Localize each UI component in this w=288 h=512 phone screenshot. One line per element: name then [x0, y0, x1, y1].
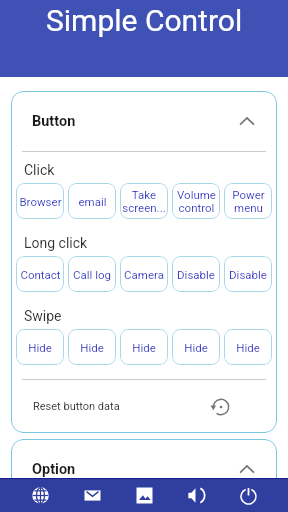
- button[interactable]: Hide: [68, 329, 116, 365]
- staticText: Disable: [177, 268, 215, 281]
- staticText: Browser: [19, 195, 62, 208]
- staticText: Swipe: [24, 308, 62, 324]
- staticText: Hide: [132, 341, 156, 354]
- button[interactable]: Disable: [224, 256, 272, 292]
- staticText: Reset button data: [33, 400, 120, 413]
- button[interactable]: Hide: [172, 329, 220, 365]
- button[interactable]: Hide: [120, 329, 168, 365]
- button[interactable]: Power: [222, 479, 274, 512]
- button[interactable]: Call log: [68, 256, 116, 292]
- button[interactable]: Browser: [16, 183, 64, 219]
- staticText: Hide: [80, 341, 104, 354]
- button[interactable]: Camera: [120, 256, 168, 292]
- staticText: Button: [32, 113, 76, 130]
- staticText: Volume control: [177, 188, 216, 214]
- staticText: Simple Control: [46, 3, 243, 38]
- button[interactable]: Gallery: [118, 479, 170, 512]
- button[interactable]: Volume: [170, 479, 222, 512]
- staticText: Hide: [236, 341, 260, 354]
- button[interactable]: Disable: [172, 256, 220, 292]
- button[interactable]: Take screen...: [120, 183, 168, 219]
- staticText: Long click: [24, 235, 88, 251]
- button[interactable]: Hide: [224, 329, 272, 365]
- staticText: Power menu: [232, 188, 265, 214]
- staticText: Click: [24, 162, 55, 178]
- staticText: Take screen...: [122, 188, 166, 214]
- staticText: Camera: [124, 268, 164, 281]
- button[interactable]: Language: [14, 479, 66, 512]
- staticText: Call log: [73, 268, 111, 281]
- button[interactable]: Button: [11, 91, 277, 151]
- button[interactable]: Hide: [16, 329, 64, 365]
- button[interactable]: Option: [11, 439, 277, 499]
- staticText: Hide: [184, 341, 208, 354]
- staticText: Disable: [229, 268, 267, 281]
- staticText: Contact: [20, 268, 61, 281]
- button[interactable]: Volume control: [172, 183, 220, 219]
- button[interactable]: Power menu: [224, 183, 272, 219]
- button[interactable]: Reset button data: [11, 380, 277, 433]
- staticText: Option: [32, 461, 76, 478]
- staticText: Hide: [28, 341, 52, 354]
- staticText: email: [78, 195, 107, 208]
- button[interactable]: Email: [66, 479, 118, 512]
- button[interactable]: Contact: [16, 256, 64, 292]
- button[interactable]: email: [68, 183, 116, 219]
